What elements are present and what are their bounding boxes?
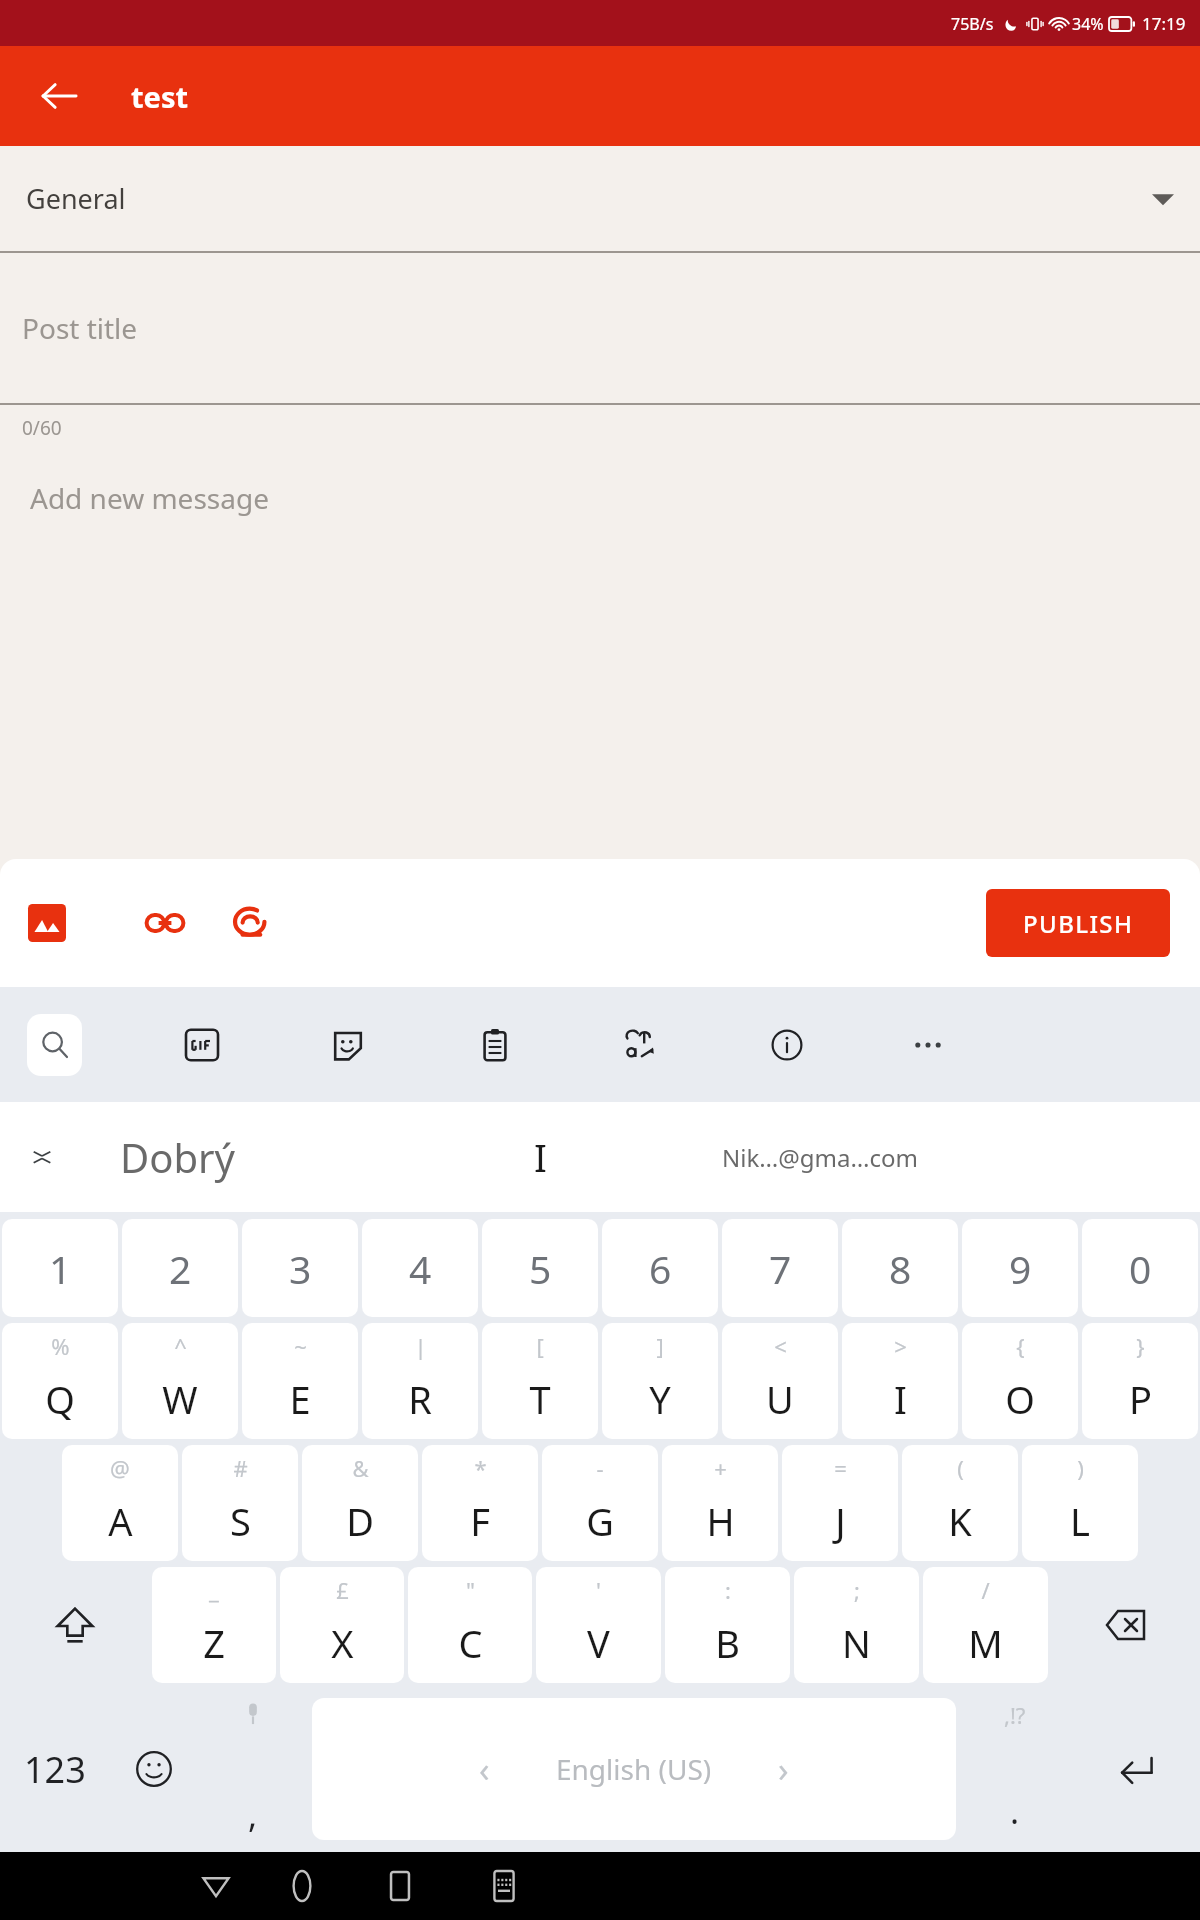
button[interactable]: Shift xyxy=(0,1564,150,1686)
button[interactable]: I xyxy=(440,1107,640,1207)
button[interactable]: 6 xyxy=(602,1219,718,1317)
staticText: Nik…@gma…com xyxy=(722,1141,918,1174)
button[interactable]: PUBLISH xyxy=(986,889,1170,957)
button[interactable]: Hide keyboard xyxy=(476,1858,532,1914)
button[interactable]: * xyxy=(422,1445,538,1561)
staticText: ( xyxy=(957,1453,964,1483)
button[interactable]: 0 xyxy=(1082,1219,1198,1317)
button[interactable]: Enter xyxy=(1070,1686,1200,1852)
button[interactable]: Back xyxy=(28,65,90,127)
staticText: 4 xyxy=(409,1242,432,1295)
button[interactable]: ; xyxy=(794,1567,919,1683)
button[interactable]: Home xyxy=(274,1858,330,1914)
button[interactable]: Post title xyxy=(0,253,1200,403)
button[interactable]: Settings info xyxy=(756,1014,818,1076)
button[interactable]: Period and punctuation xyxy=(960,1686,1070,1852)
staticText: Add new message xyxy=(30,479,269,517)
button[interactable]: General xyxy=(0,146,1200,251)
button[interactable]: Nik…@gma…com xyxy=(670,1107,970,1207)
button[interactable]: ~ xyxy=(242,1323,358,1439)
staticText: > xyxy=(894,1331,907,1361)
button[interactable]: Stickers xyxy=(317,1014,379,1076)
staticText: Z xyxy=(203,1617,225,1669)
button[interactable]: Attach file xyxy=(222,894,280,952)
button[interactable]: Add new message xyxy=(0,441,1200,859)
button[interactable]: " xyxy=(408,1567,532,1683)
button[interactable]: More options xyxy=(898,1015,958,1075)
staticText: J xyxy=(835,1495,846,1547)
button[interactable]: Add image xyxy=(18,894,76,952)
button[interactable]: > xyxy=(842,1323,958,1439)
button[interactable]: GIF xyxy=(171,1014,233,1076)
staticText: L xyxy=(1070,1495,1090,1547)
staticText: Dobrý xyxy=(120,1130,235,1184)
button[interactable]: } xyxy=(1082,1323,1198,1439)
staticText: A xyxy=(108,1495,133,1547)
staticText: 0 xyxy=(1129,1242,1152,1295)
staticText: English (US) xyxy=(556,1750,712,1788)
staticText: Y xyxy=(649,1373,671,1425)
button[interactable]: 3 xyxy=(242,1219,358,1317)
button[interactable]: 7 xyxy=(722,1219,838,1317)
button[interactable]: < xyxy=(722,1323,838,1439)
button[interactable]: & xyxy=(302,1445,418,1561)
staticText: < xyxy=(774,1331,787,1361)
button[interactable]: Collapse suggestions xyxy=(14,1129,70,1185)
staticText: 34% xyxy=(1072,13,1104,35)
button[interactable]: Comma and voice input xyxy=(198,1686,308,1852)
button[interactable]: Emoji xyxy=(110,1686,198,1852)
button[interactable]: Clipboard xyxy=(464,1014,526,1076)
button[interactable]: @ xyxy=(62,1445,178,1561)
button[interactable]: ‹ xyxy=(312,1698,956,1840)
button[interactable]: = xyxy=(782,1445,898,1561)
button[interactable]: ^ xyxy=(122,1323,238,1439)
button[interactable]: 5 xyxy=(482,1219,598,1317)
button[interactable]: Translate xyxy=(610,1014,672,1076)
button[interactable]: ] xyxy=(602,1323,718,1439)
button[interactable]: Back xyxy=(188,1858,244,1914)
button[interactable]: ) xyxy=(1022,1445,1138,1561)
staticText: › xyxy=(778,1746,789,1792)
button[interactable]: | xyxy=(362,1323,478,1439)
staticText: K xyxy=(948,1495,972,1547)
button[interactable]: % xyxy=(2,1323,118,1439)
button[interactable]: [ xyxy=(482,1323,598,1439)
staticText: U xyxy=(766,1373,794,1425)
button[interactable]: / xyxy=(923,1567,1048,1683)
button[interactable]: - xyxy=(542,1445,658,1561)
staticText: & xyxy=(352,1453,369,1483)
button[interactable]: ' xyxy=(536,1567,661,1683)
staticText: 123 xyxy=(24,1745,86,1794)
staticText: { xyxy=(1016,1331,1025,1361)
button[interactable]: Search xyxy=(27,1014,82,1076)
staticText: £ xyxy=(336,1575,349,1605)
button[interactable]: _ xyxy=(152,1567,276,1683)
button[interactable]: Insert link xyxy=(136,894,194,952)
staticText: 9 xyxy=(1009,1242,1032,1295)
button[interactable]: 2 xyxy=(122,1219,238,1317)
staticText: = xyxy=(834,1453,847,1483)
button[interactable]: + xyxy=(662,1445,778,1561)
button[interactable]: 1 xyxy=(2,1219,118,1317)
button[interactable]: 123 xyxy=(0,1686,110,1852)
button[interactable]: 8 xyxy=(842,1219,958,1317)
button[interactable]: : xyxy=(665,1567,790,1683)
staticText: test xyxy=(131,77,189,116)
staticText: E xyxy=(289,1373,311,1425)
button[interactable]: { xyxy=(962,1323,1078,1439)
staticText: 17:19 xyxy=(1142,12,1186,35)
button[interactable]: Recent apps xyxy=(372,1858,428,1914)
staticText: H xyxy=(706,1495,735,1547)
button[interactable]: £ xyxy=(280,1567,404,1683)
staticText: G xyxy=(586,1495,614,1547)
button[interactable]: # xyxy=(182,1445,298,1561)
button[interactable]: 9 xyxy=(962,1219,1078,1317)
button[interactable]: Backspace xyxy=(1050,1564,1200,1686)
button[interactable]: ( xyxy=(902,1445,1018,1561)
button[interactable]: Dobrý xyxy=(120,1107,400,1207)
staticText: | xyxy=(414,1331,427,1361)
staticText: ~ xyxy=(294,1331,307,1361)
staticText: ) xyxy=(1077,1453,1084,1483)
staticText: V xyxy=(587,1617,610,1669)
button[interactable]: 4 xyxy=(362,1219,478,1317)
